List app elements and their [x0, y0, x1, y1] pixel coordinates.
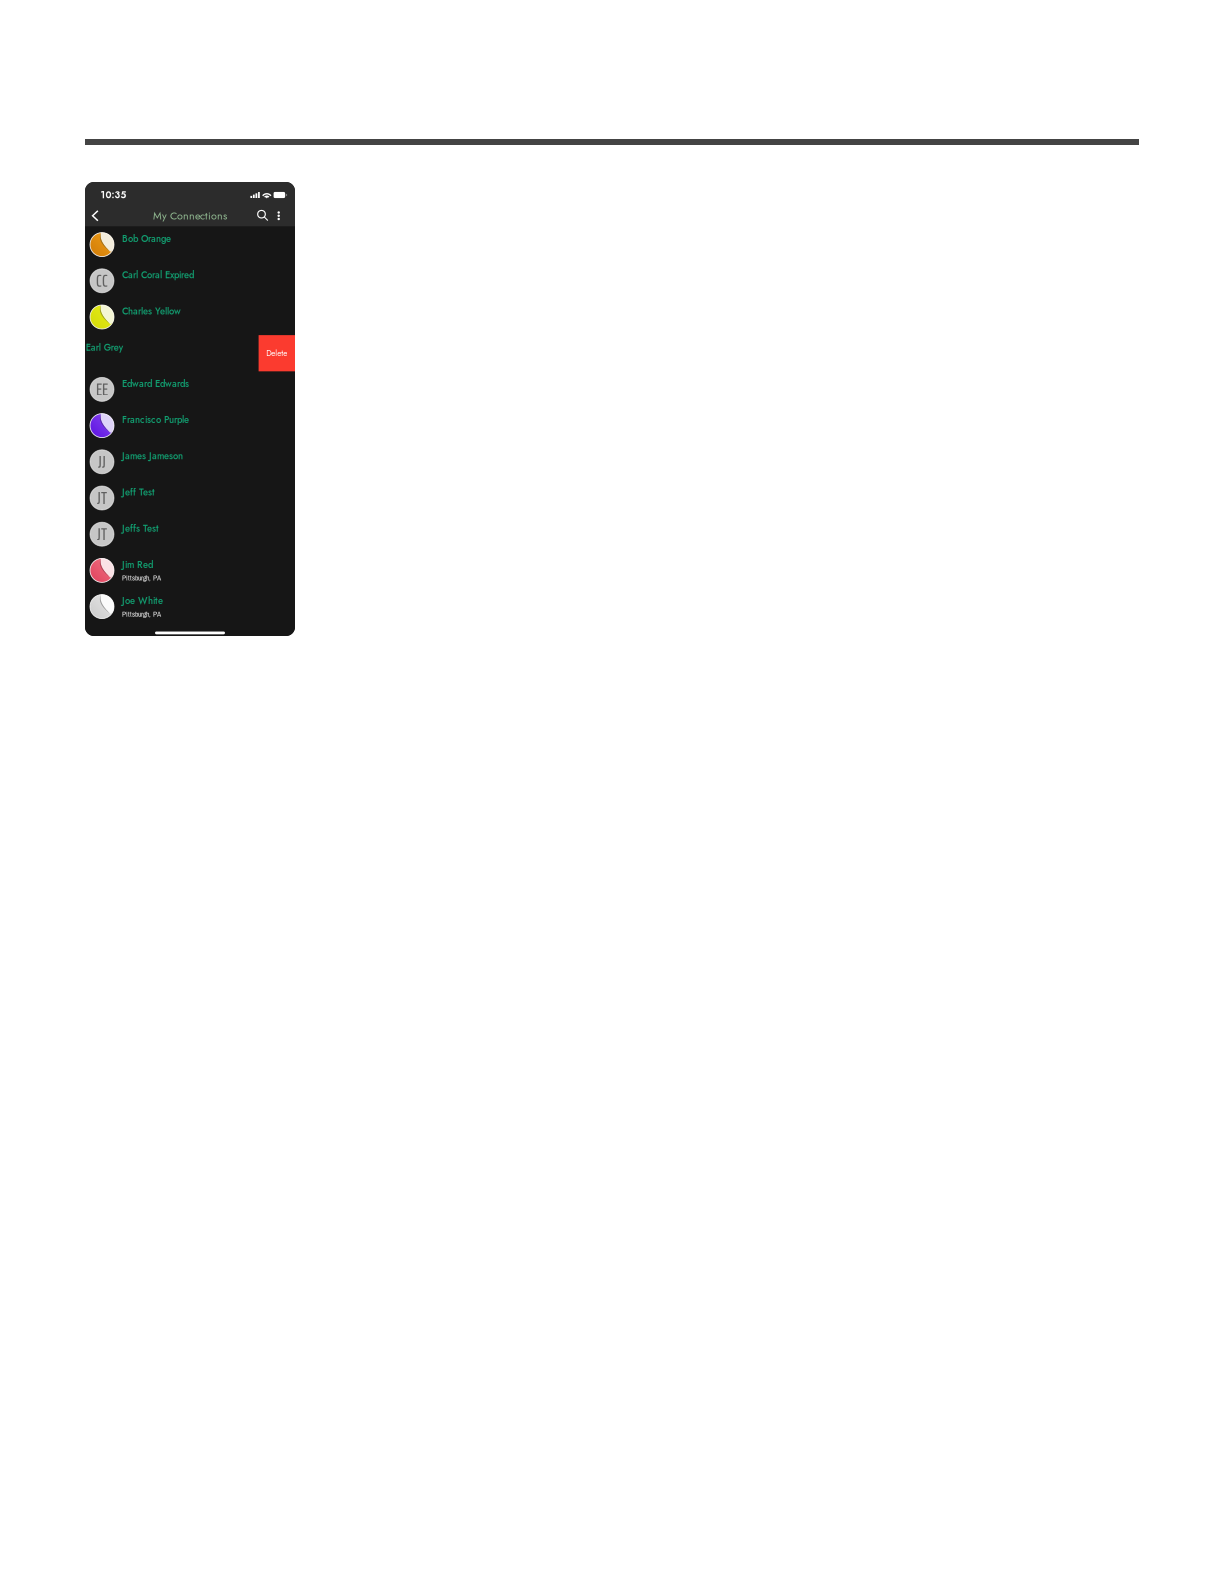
staticText: Joe White: [122, 594, 163, 608]
button[interactable]: More options: [272, 205, 295, 226]
staticText: Pittsburgh, PA: [122, 609, 161, 619]
button[interactable]: EE: [85, 371, 295, 407]
button[interactable]: CC: [85, 263, 295, 299]
staticText: Francisco Purple: [122, 413, 189, 427]
button[interactable]: JT: [85, 516, 295, 552]
staticText: Delete: [266, 347, 287, 359]
staticText: My Connections: [153, 208, 227, 223]
staticText: Jim Red: [122, 558, 153, 571]
button[interactable]: Delete: [259, 335, 295, 371]
staticText: Pittsburgh, PA: [122, 573, 161, 583]
button[interactable]: JT: [85, 480, 295, 516]
button[interactable]: Search: [252, 205, 272, 226]
staticText: Bob Orange: [122, 232, 171, 246]
button[interactable]: Jim Red: [85, 552, 295, 588]
staticText: EE: [96, 376, 108, 403]
staticText: James Jameson: [122, 449, 183, 463]
staticText: JJ: [98, 448, 106, 475]
staticText: JT: [97, 484, 107, 512]
button[interactable]: JJ: [85, 444, 295, 480]
button[interactable]: Back: [85, 205, 106, 226]
staticText: JT: [97, 521, 107, 548]
staticText: CC: [96, 267, 108, 294]
staticText: Edward Edwards: [122, 377, 189, 390]
staticText: 10:35: [100, 188, 126, 202]
button[interactable]: Joe White: [85, 588, 295, 625]
staticText: Carl Coral Expired: [122, 268, 194, 282]
staticText: Earl Grey: [86, 341, 123, 354]
staticText: Charles Yellow: [122, 304, 181, 318]
staticText: Jeffs Test: [122, 522, 159, 535]
button[interactable]: Francisco Purple: [85, 407, 295, 444]
staticText: Jeff Test: [122, 485, 155, 499]
button[interactable]: Bob Orange: [85, 226, 295, 263]
button[interactable]: Charles Yellow: [85, 299, 295, 335]
